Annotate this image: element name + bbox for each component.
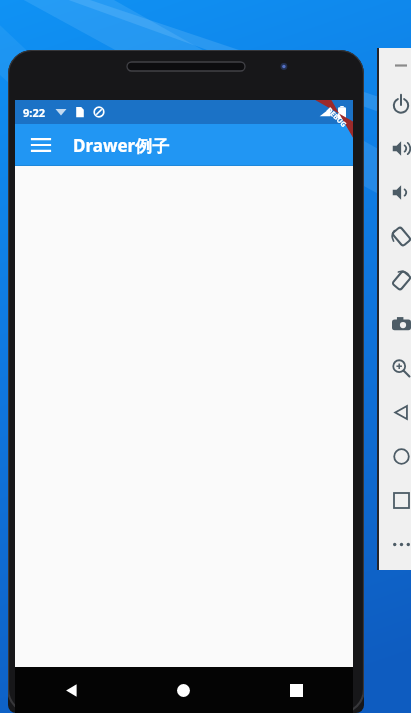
staticText: 9:22 (23, 105, 45, 120)
button[interactable]: Power (377, 82, 411, 126)
staticText: DEBUG (324, 106, 349, 130)
button[interactable]: Back (15, 667, 127, 713)
staticText: Drawer例子 (73, 134, 170, 157)
button[interactable]: Volume up (377, 126, 411, 170)
button[interactable]: Rotate left (377, 214, 411, 258)
button[interactable]: Back (377, 390, 411, 434)
button[interactable]: Volume down (377, 170, 411, 214)
button[interactable]: Recent apps (240, 667, 353, 713)
button[interactable]: Zoom (377, 346, 411, 390)
button[interactable]: More (377, 522, 411, 566)
button[interactable]: Open navigation drawer (23, 127, 59, 163)
button[interactable]: Home (127, 667, 240, 713)
button[interactable]: Take screenshot (377, 302, 411, 346)
button[interactable]: Minimize (377, 48, 411, 82)
button[interactable]: Home (377, 434, 411, 478)
button[interactable]: Overview (377, 478, 411, 522)
button[interactable]: Rotate right (377, 258, 411, 302)
